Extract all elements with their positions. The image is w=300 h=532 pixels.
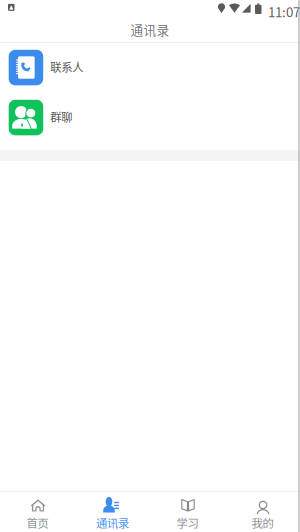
button[interactable]: 通讯录: [75, 492, 150, 532]
staticText: 首页: [26, 514, 48, 531]
button[interactable]: 学习: [150, 492, 225, 532]
staticText: 联系人: [50, 58, 83, 75]
staticText: 群聊: [50, 108, 72, 125]
staticText: 学习: [176, 514, 198, 531]
staticText: 通讯录: [96, 514, 129, 531]
staticText: 通讯录: [130, 20, 169, 39]
button[interactable]: 联系人: [0, 43, 300, 93]
staticText: 11:07: [268, 2, 300, 21]
button[interactable]: 首页: [0, 492, 75, 532]
button[interactable]: 我的: [225, 492, 300, 532]
staticText: 我的: [251, 514, 273, 531]
button[interactable]: 群聊: [0, 93, 300, 143]
